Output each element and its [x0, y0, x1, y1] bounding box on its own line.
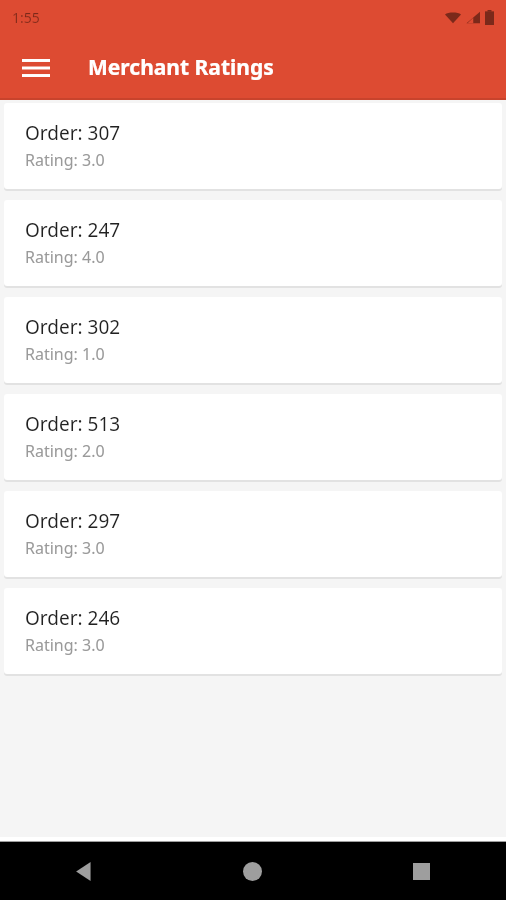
- staticText: Rating: 3.0: [25, 634, 105, 656]
- staticText: Rating: 3.0: [25, 537, 105, 559]
- staticText: Order: 246: [25, 605, 121, 631]
- button[interactable]: Home: [168, 842, 337, 900]
- staticText: Rating: 2.0: [25, 440, 105, 462]
- button[interactable]: Open navigation menu: [10, 42, 62, 94]
- button[interactable]: Order: 297: [4, 491, 502, 577]
- staticText: Rating: 1.0: [25, 343, 105, 365]
- button[interactable]: Recent apps: [337, 842, 506, 900]
- button[interactable]: Order: 247: [4, 200, 502, 286]
- staticText: 1:55: [12, 8, 40, 27]
- staticText: Order: 307: [25, 120, 121, 146]
- staticText: Order: 513: [25, 411, 121, 437]
- staticText: Rating: 3.0: [25, 149, 105, 171]
- button[interactable]: Back: [0, 842, 168, 900]
- button[interactable]: Order: 302: [4, 297, 502, 383]
- staticText: Order: 247: [25, 217, 121, 243]
- staticText: Rating: 4.0: [25, 246, 105, 268]
- staticText: Order: 297: [25, 508, 121, 534]
- button[interactable]: Order: 246: [4, 588, 502, 674]
- staticText: Order: 302: [25, 314, 121, 340]
- button[interactable]: Order: 307: [4, 103, 502, 189]
- staticText: Merchant Ratings: [88, 53, 274, 82]
- button[interactable]: Order: 513: [4, 394, 502, 480]
